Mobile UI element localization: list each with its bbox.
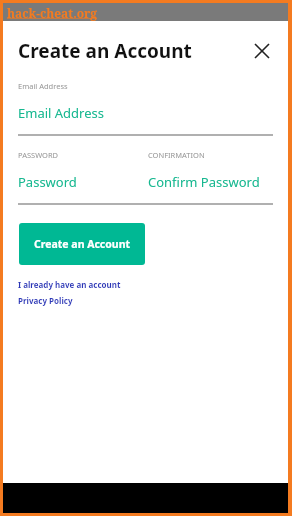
staticText: Create an Account [18, 38, 192, 64]
button[interactable]: Email Address [18, 104, 273, 122]
staticText: CONFIRMATION [148, 150, 205, 160]
button[interactable]: Privacy Policy [18, 295, 73, 306]
staticText: Create an Account [34, 237, 131, 251]
staticText: Email Address [18, 81, 68, 91]
button[interactable]: Password [18, 173, 148, 191]
staticText: I already have an account [18, 279, 121, 290]
staticText: hack-cheat.org [7, 5, 98, 21]
staticText: PASSWORD [18, 150, 148, 160]
staticText: Password [18, 173, 77, 191]
staticText: Confirm Password [148, 173, 260, 191]
button[interactable]: I already have an account [18, 279, 121, 290]
button[interactable]: Create an Account [19, 223, 145, 265]
staticText: Email Address [18, 104, 104, 122]
button[interactable]: Close [248, 37, 276, 65]
button[interactable]: Confirm Password [148, 173, 273, 191]
staticText: Privacy Policy [18, 295, 73, 306]
